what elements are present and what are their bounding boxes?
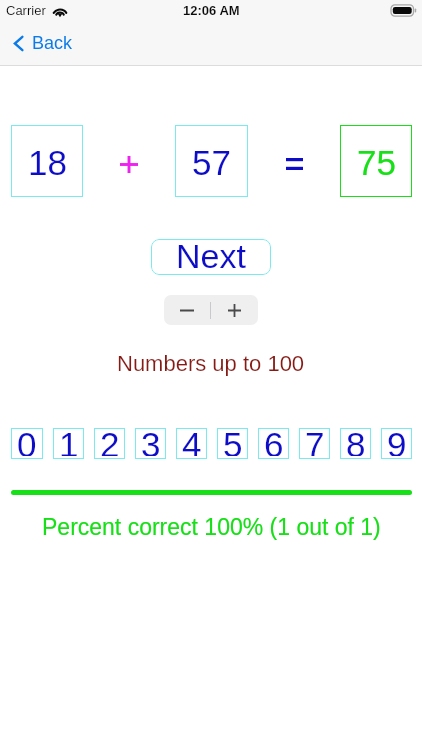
staticText: 4 [182, 425, 202, 456]
staticText: 5 [223, 425, 243, 456]
staticText: 75 [357, 143, 396, 182]
staticText: 9 [387, 425, 407, 456]
button[interactable]: 9 [381, 428, 412, 459]
button[interactable]: 6 [258, 428, 289, 459]
button[interactable]: 5 [217, 428, 248, 459]
button[interactable]: Increase [211, 295, 258, 325]
button[interactable]: 1 [53, 428, 84, 459]
staticText: Percent correct 100% (1 out of 1) [42, 514, 381, 540]
staticText: Carrier [6, 3, 46, 18]
staticText: 12:06 AM [183, 3, 240, 18]
button[interactable]: 3 [135, 428, 166, 459]
button[interactable]: 18 [11, 125, 83, 197]
staticText: 8 [346, 425, 366, 456]
staticText: 3 [141, 425, 161, 456]
staticText: Back [32, 33, 73, 53]
staticText: 57 [192, 143, 231, 182]
staticText: 18 [28, 143, 67, 182]
button[interactable]: 57 [175, 125, 248, 197]
staticText: Numbers up to 100 [117, 351, 305, 376]
staticText: 2 [100, 425, 120, 456]
button[interactable]: 7 [299, 428, 330, 459]
button[interactable]: Decrease [164, 295, 210, 325]
button[interactable]: 0 [11, 428, 43, 459]
button[interactable]: 2 [94, 428, 125, 459]
staticText: 0 [17, 425, 37, 456]
button[interactable]: 4 [176, 428, 207, 459]
staticText: 6 [264, 425, 284, 456]
button[interactable]: Back [0, 21, 87, 65]
staticText: Next [176, 239, 246, 273]
staticText: 1 [59, 425, 79, 456]
button[interactable]: Next [151, 239, 271, 275]
button[interactable]: 8 [340, 428, 371, 459]
staticText: 7 [305, 425, 325, 456]
button[interactable]: 75 [340, 125, 412, 197]
